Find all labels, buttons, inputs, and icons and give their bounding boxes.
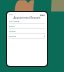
- button[interactable]: Appointment Request: [7, 16, 47, 19]
- staticText: Email: [9, 25, 15, 27]
- staticText: ●●▮: [40, 14, 45, 16]
- staticText: Appointment Request: [13, 16, 41, 19]
- button[interactable]: Service: [9, 35, 45, 40]
- staticText: Phone: [9, 30, 16, 32]
- staticText: Service: [9, 35, 17, 37]
- staticText: 9:41: [9, 13, 14, 16]
- button[interactable]: Phone: [9, 30, 45, 35]
- button[interactable]: Full name: [9, 20, 45, 25]
- staticText: Full name: [9, 20, 20, 22]
- button[interactable]: Email: [9, 25, 45, 30]
